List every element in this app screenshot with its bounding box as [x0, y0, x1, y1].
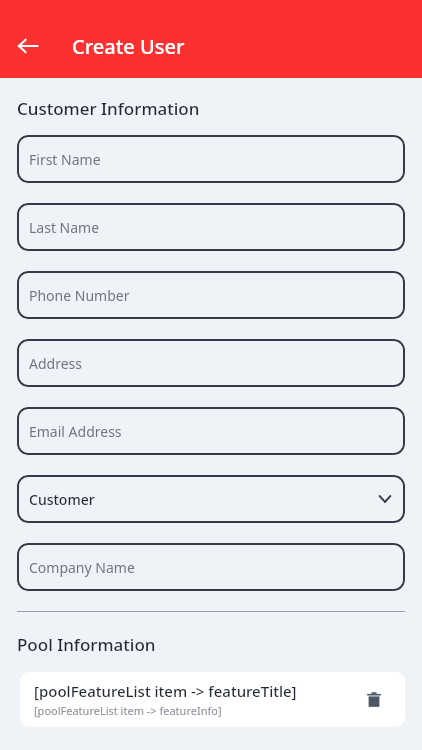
staticText: Pool Information — [17, 633, 156, 656]
staticText: [poolFeatureList item -> featureInfo] — [34, 703, 222, 718]
staticText: Last Name — [29, 218, 100, 237]
button[interactable]: Email Address — [17, 407, 405, 455]
button[interactable]: Phone Number — [17, 271, 405, 319]
staticText: Company Name — [29, 558, 135, 577]
staticText: Email Address — [29, 422, 122, 441]
staticText: Customer — [29, 490, 95, 509]
button[interactable]: First Name — [17, 135, 405, 183]
staticText: Phone Number — [29, 286, 130, 305]
button[interactable]: Back — [6, 24, 50, 68]
button[interactable]: Last Name — [17, 203, 405, 251]
staticText: Create User — [72, 33, 185, 60]
button[interactable]: [poolFeatureList item -> featureTitle] — [20, 672, 405, 727]
button[interactable]: Customer — [17, 475, 405, 523]
button[interactable]: Address — [17, 339, 405, 387]
staticText: First Name — [29, 150, 101, 169]
staticText: Address — [29, 354, 82, 373]
staticText: Customer Information — [17, 97, 200, 120]
staticText: [poolFeatureList item -> featureTitle] — [34, 681, 297, 701]
button[interactable]: Company Name — [17, 543, 405, 591]
button[interactable]: Delete — [357, 683, 391, 717]
